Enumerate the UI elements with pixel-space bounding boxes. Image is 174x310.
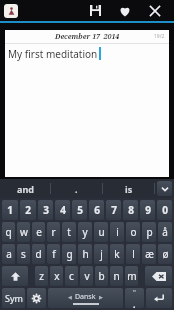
staticText: ø — [162, 247, 169, 261]
staticText: r — [51, 225, 56, 239]
button[interactable]: o — [126, 222, 140, 242]
button[interactable]: q — [2, 222, 15, 242]
staticText: December 17 2014 — [55, 32, 120, 42]
staticText: 6 — [94, 203, 100, 217]
button[interactable]: 1 — [2, 200, 18, 220]
button[interactable]: 3 — [38, 200, 53, 220]
staticText: m — [127, 269, 137, 283]
button[interactable]: App — [4, 4, 18, 18]
staticText: a — [6, 247, 12, 261]
staticText: 2 — [25, 203, 31, 217]
button[interactable]: l — [126, 244, 140, 264]
button[interactable]: t — [62, 222, 76, 242]
staticText: Sym — [5, 292, 23, 304]
button[interactable]: v — [80, 266, 93, 286]
button[interactable]: x — [50, 266, 63, 286]
other: Backspace — [152, 272, 166, 281]
staticText: d — [35, 247, 42, 261]
button[interactable]: 8 — [123, 200, 138, 220]
button[interactable]: r — [47, 222, 60, 242]
button[interactable]: 2 — [20, 200, 36, 220]
button[interactable]: s — [17, 244, 30, 264]
staticText: c — [69, 269, 74, 283]
button[interactable]: ø — [158, 244, 172, 264]
button[interactable]: y — [78, 222, 92, 242]
button[interactable]: m — [125, 266, 138, 286]
staticText: l — [132, 247, 135, 261]
button[interactable]: j — [94, 244, 108, 264]
button[interactable]: a — [2, 244, 15, 264]
staticText: k — [114, 247, 120, 261]
staticText: f — [52, 247, 56, 261]
button[interactable]: 6 — [89, 200, 104, 220]
staticText: 7 — [111, 203, 117, 217]
staticText: e — [36, 225, 42, 239]
staticText: n — [113, 269, 120, 283]
button[interactable]: e — [32, 222, 45, 242]
button[interactable]: and — [0, 179, 50, 198]
button[interactable]: h — [78, 244, 92, 264]
button[interactable]: i — [110, 222, 124, 242]
staticText: 0 — [162, 203, 168, 217]
staticText: 4 — [60, 203, 66, 217]
button[interactable]: 0 — [157, 200, 172, 220]
staticText: s — [21, 247, 26, 261]
button[interactable]: Save — [83, 0, 107, 21]
button[interactable]: 4 — [55, 200, 70, 220]
button[interactable]: ◀ — [48, 288, 123, 308]
button[interactable]: Close — [143, 0, 167, 21]
button[interactable]: is — [103, 179, 154, 198]
staticText: . — [75, 183, 78, 195]
staticText: u — [98, 225, 105, 239]
staticText: 5 — [77, 203, 83, 217]
button[interactable]: Backspace — [145, 266, 172, 286]
button[interactable]: Shift — [2, 266, 28, 286]
button[interactable]: c — [65, 266, 78, 286]
button[interactable]: " — [125, 288, 144, 308]
button[interactable]: æ — [142, 244, 156, 264]
staticText: g — [66, 247, 73, 261]
button[interactable]: 9 — [140, 200, 155, 220]
staticText: w — [20, 225, 28, 239]
staticText: j — [100, 247, 103, 261]
staticText: x — [54, 269, 60, 283]
staticText: is — [125, 183, 133, 195]
button[interactable]: u — [94, 222, 108, 242]
staticText: æ — [145, 247, 154, 261]
button[interactable]: z — [35, 266, 48, 286]
staticText: o — [130, 225, 137, 239]
button[interactable]: 7 — [106, 200, 121, 220]
staticText: 8 — [128, 203, 134, 217]
button[interactable]: Favorite — [113, 0, 137, 21]
staticText: p — [146, 225, 153, 239]
staticText: 9 — [145, 203, 151, 217]
button[interactable]: December 17 2014 — [5, 30, 169, 177]
staticText: q — [5, 225, 12, 239]
button[interactable]: g — [62, 244, 76, 264]
button[interactable]: å — [158, 222, 172, 242]
button[interactable]: . — [51, 179, 102, 198]
staticText: å — [162, 225, 168, 239]
staticText: " — [133, 288, 136, 298]
button[interactable]: More suggestions — [157, 181, 172, 196]
button[interactable]: Sym — [2, 288, 25, 308]
other: Enter — [153, 292, 165, 304]
staticText: b — [98, 269, 105, 283]
button[interactable]: b — [95, 266, 108, 286]
button[interactable]: d — [32, 244, 45, 264]
button[interactable]: w — [17, 222, 30, 242]
staticText: y — [82, 225, 88, 239]
button[interactable]: k — [110, 244, 124, 264]
staticText: v — [84, 269, 90, 283]
other: Shift — [10, 271, 21, 282]
button[interactable]: 5 — [72, 200, 87, 220]
button[interactable]: f — [47, 244, 60, 264]
staticText: ▶ — [99, 294, 103, 300]
button[interactable]: Settings — [27, 288, 46, 308]
staticText: 19/2 — [154, 33, 165, 40]
staticText: t — [67, 225, 71, 239]
staticText: z — [39, 269, 44, 283]
button[interactable]: Enter — [146, 288, 172, 308]
button[interactable]: n — [110, 266, 123, 286]
button[interactable]: p — [142, 222, 156, 242]
